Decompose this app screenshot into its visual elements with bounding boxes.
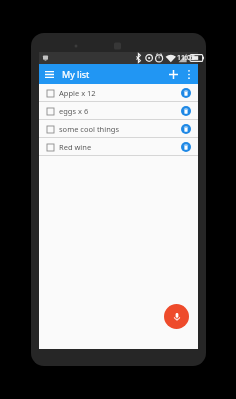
staticText: 11:05 [177,53,195,63]
staticText: Apple x 12 [59,88,179,98]
button[interactable]: Check off eggs x 6 [39,102,198,119]
button[interactable]: Check off some cool things [44,123,56,135]
button[interactable]: Check off Red wine [39,138,198,155]
button[interactable]: Add item [165,66,182,83]
staticText: My list [62,68,165,80]
button[interactable]: Open navigation drawer [42,67,57,82]
button[interactable]: Check off eggs x 6 [44,105,56,117]
button[interactable]: Delete some cool things [179,122,193,136]
button[interactable]: Delete Red wine [179,140,193,154]
button[interactable]: Delete eggs x 6 [179,104,193,118]
button[interactable]: Check off Red wine [44,141,56,153]
staticText: Red wine [59,142,179,152]
button[interactable]: Check off Apple x 12 [44,87,56,99]
button[interactable]: Add item by voice [164,304,189,329]
button[interactable]: More options [182,67,196,81]
button[interactable]: Delete Apple x 12 [179,86,193,100]
button[interactable]: Check off some cool things [39,120,198,137]
button[interactable]: Check off Apple x 12 [39,84,198,101]
staticText: eggs x 6 [59,106,179,116]
staticText: some cool things [59,124,179,134]
